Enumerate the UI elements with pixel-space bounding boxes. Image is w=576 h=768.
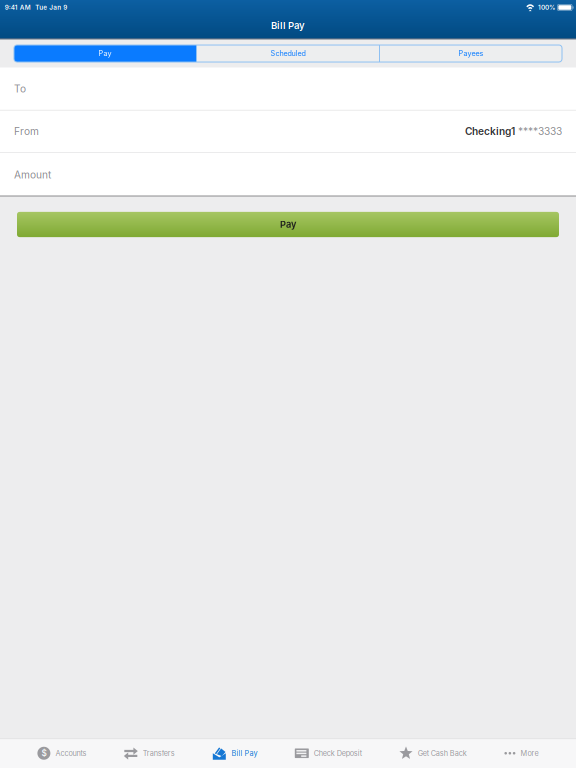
staticText: Bill Pay — [271, 20, 305, 31]
staticText: Payees — [458, 49, 483, 58]
staticText: Amount — [14, 169, 51, 181]
button[interactable]: More — [504, 738, 539, 768]
staticText: Accounts — [55, 749, 86, 758]
button[interactable]: Scheduled — [197, 45, 379, 62]
button[interactable]: Amount — [0, 153, 576, 197]
staticText: More — [521, 749, 539, 758]
button[interactable]: Payees — [380, 45, 562, 62]
button[interactable]: From — [0, 111, 576, 152]
staticText: Pay — [98, 49, 111, 58]
staticText: Tue Jan 9 — [35, 4, 67, 11]
staticText: To — [14, 83, 26, 95]
staticText: 100% — [538, 4, 555, 11]
button[interactable]: Bill Pay — [212, 738, 257, 768]
button[interactable]: Pay — [14, 45, 196, 62]
staticText: Get Cash Back — [418, 749, 467, 758]
staticText: ****3333 — [518, 125, 562, 137]
button[interactable]: Transfers — [124, 738, 175, 768]
staticText: Transfers — [143, 749, 175, 758]
staticText: Pay — [280, 219, 296, 230]
button[interactable]: Pay — [17, 212, 559, 237]
button[interactable]: $ — [37, 738, 86, 768]
staticText: From — [14, 125, 39, 137]
staticText: Checking1 — [465, 125, 515, 137]
button[interactable]: Get Cash Back — [399, 738, 467, 768]
staticText: $ — [41, 748, 46, 758]
staticText: Scheduled — [270, 49, 305, 58]
button[interactable]: Check Deposit — [295, 738, 362, 768]
staticText: Check Deposit — [314, 749, 362, 758]
staticText: Bill Pay — [231, 749, 257, 758]
staticText: 9:41 AM — [5, 4, 31, 11]
